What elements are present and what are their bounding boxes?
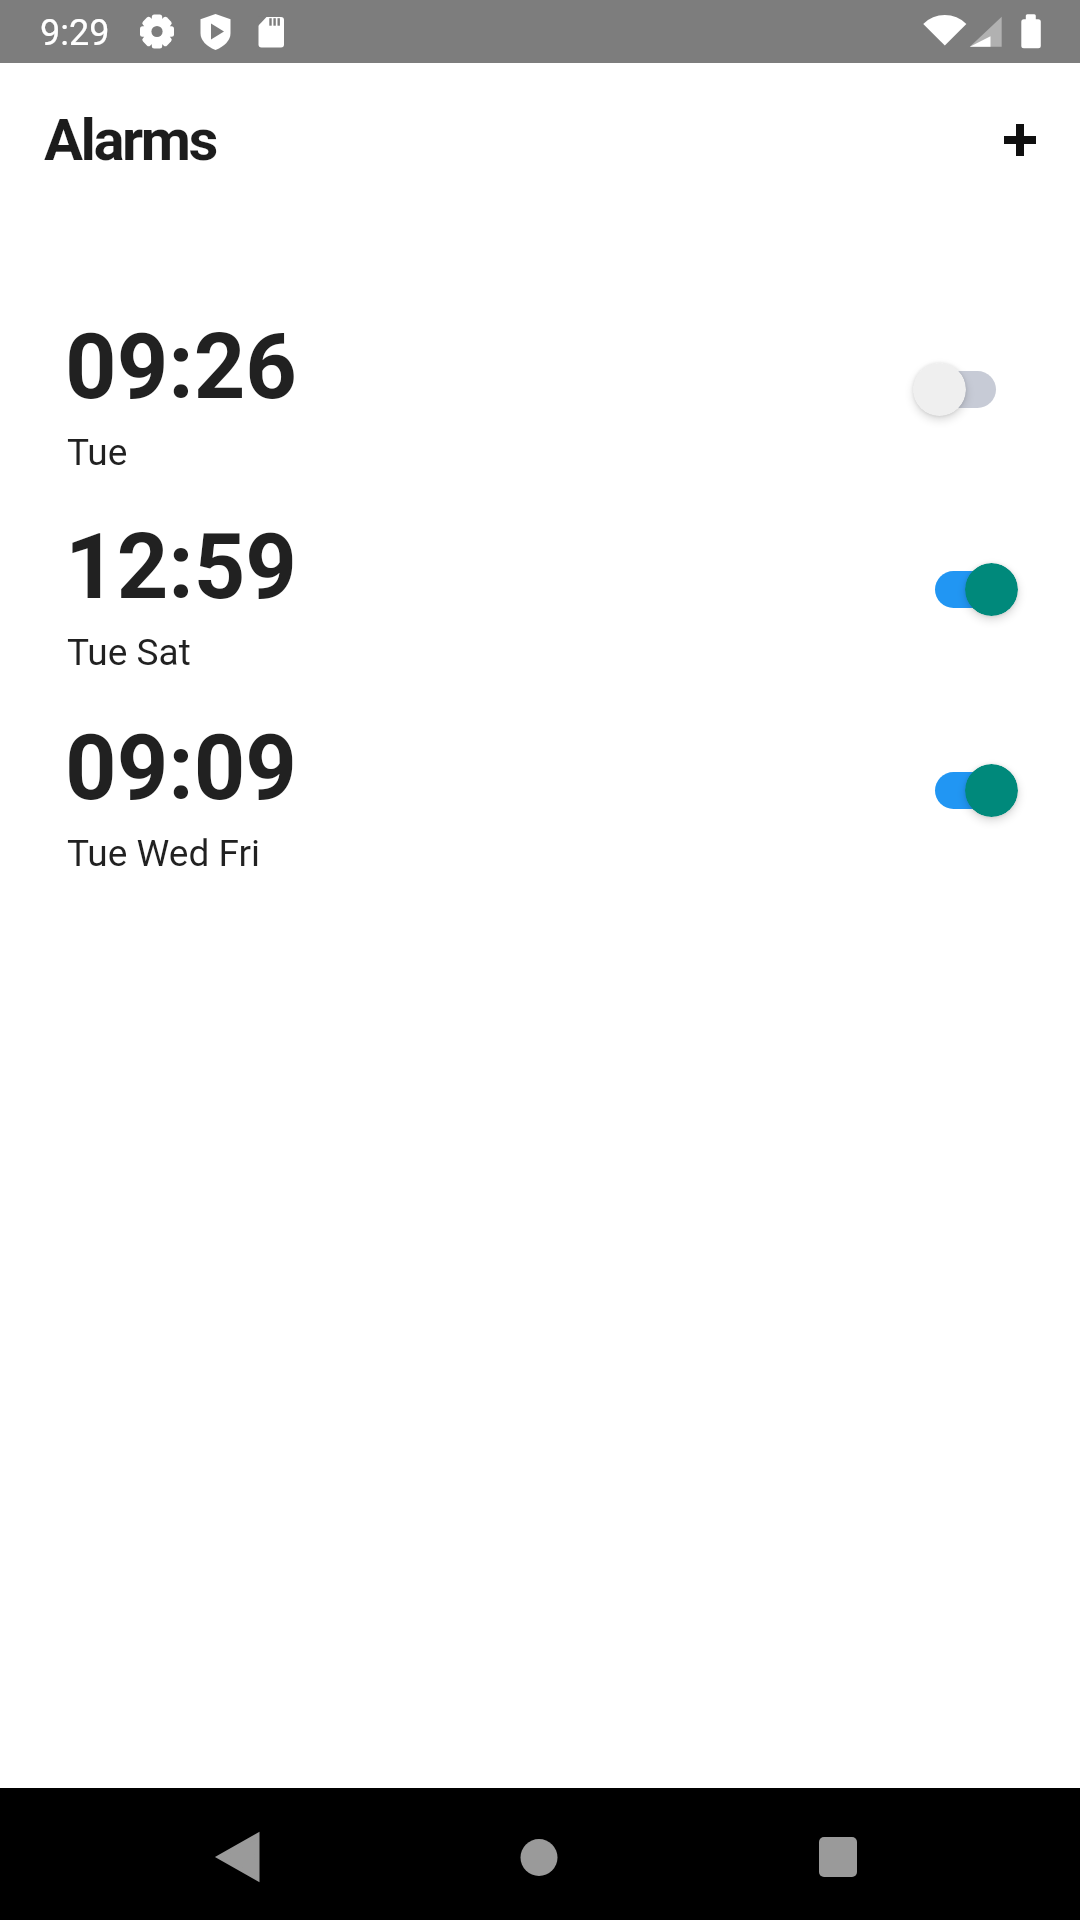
staticText: 09:26 bbox=[65, 315, 297, 420]
staticText: Tue bbox=[67, 431, 128, 474]
button[interactable] bbox=[965, 764, 1018, 817]
button[interactable]: 09:09 bbox=[0, 690, 1080, 890]
button[interactable] bbox=[796, 1812, 880, 1896]
staticText: Tue Wed Fri bbox=[67, 832, 261, 875]
button[interactable]: 09:26 bbox=[0, 289, 1080, 489]
staticText: 12:59 bbox=[65, 515, 297, 620]
button[interactable] bbox=[965, 563, 1018, 616]
staticText: 9:29 bbox=[40, 12, 110, 54]
button[interactable] bbox=[978, 98, 1062, 182]
button[interactable]: 12:59 bbox=[0, 489, 1080, 689]
staticText: Alarms bbox=[44, 106, 216, 174]
button[interactable] bbox=[497, 1812, 581, 1896]
staticText: Tue Sat bbox=[67, 631, 191, 674]
button[interactable] bbox=[196, 1812, 280, 1896]
staticText: 09:09 bbox=[65, 716, 297, 821]
button[interactable] bbox=[913, 363, 966, 416]
